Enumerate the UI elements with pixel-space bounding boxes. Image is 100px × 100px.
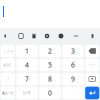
button[interactable]: Stickers	[56, 31, 65, 41]
staticText: 0	[48, 89, 52, 97]
button[interactable]: Clipboard	[16, 31, 25, 41]
button[interactable]: /	[0, 72, 15, 86]
button[interactable]: ☆♪→	[0, 44, 15, 58]
staticText: 2	[48, 47, 52, 55]
button[interactable]: 0	[38, 86, 61, 100]
button[interactable]: 記号	[15, 86, 38, 100]
staticText: 5	[48, 61, 52, 69]
button[interactable]: More	[71, 31, 80, 41]
button[interactable]: あいう	[0, 86, 15, 100]
staticText: 1	[25, 47, 29, 55]
button[interactable]: 8	[38, 72, 61, 86]
button[interactable]: 9	[61, 72, 84, 86]
staticText: ABC	[3, 62, 12, 68]
button[interactable]: ABC	[0, 58, 15, 72]
staticText: あいう	[2, 90, 14, 95]
button[interactable]: Voice input	[88, 31, 97, 41]
button[interactable]: Delete	[29, 31, 38, 41]
button[interactable]: 1	[15, 44, 38, 58]
staticText: 3	[71, 47, 75, 55]
staticText: 8	[48, 75, 52, 83]
staticText: ☆♪→	[3, 49, 13, 53]
staticText: 4	[25, 61, 29, 69]
staticText: 7	[25, 75, 29, 83]
button[interactable]: ,	[61, 86, 84, 100]
staticText: ^_^	[89, 62, 95, 68]
button[interactable]: 3	[61, 44, 84, 58]
button[interactable]: Settings	[42, 31, 51, 41]
button[interactable]: 2	[38, 44, 61, 58]
button[interactable]: 4	[15, 58, 38, 72]
button[interactable]	[84, 86, 100, 100]
button[interactable]: ^_^	[84, 58, 100, 72]
staticText: /	[7, 76, 8, 82]
staticText: 記号	[23, 90, 31, 95]
staticText: 6	[71, 61, 75, 69]
button[interactable]: 6	[61, 58, 84, 72]
staticText: 9	[71, 75, 75, 83]
button[interactable]: Back	[0, 31, 9, 41]
button[interactable]: 5	[38, 58, 61, 72]
staticText: ,	[72, 90, 73, 96]
button[interactable]: 7	[15, 72, 38, 86]
button[interactable]	[84, 72, 100, 86]
button[interactable]	[84, 44, 100, 58]
